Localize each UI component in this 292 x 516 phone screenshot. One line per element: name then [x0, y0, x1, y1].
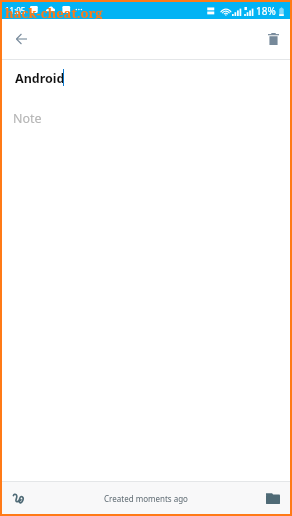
button[interactable]: Folder [260, 485, 286, 511]
staticText: 11:05 [5, 5, 26, 16]
button[interactable]: Android [2, 60, 290, 90]
button[interactable]: Draw [6, 485, 32, 511]
staticText: Created moments ago [104, 493, 188, 504]
staticText: Note [13, 110, 42, 127]
staticText: Android [15, 70, 65, 87]
button[interactable]: Back [5, 23, 37, 55]
button[interactable]: Delete [257, 23, 289, 55]
staticText: hack-cheat.org [5, 4, 103, 19]
staticText: 18% [256, 4, 276, 18]
